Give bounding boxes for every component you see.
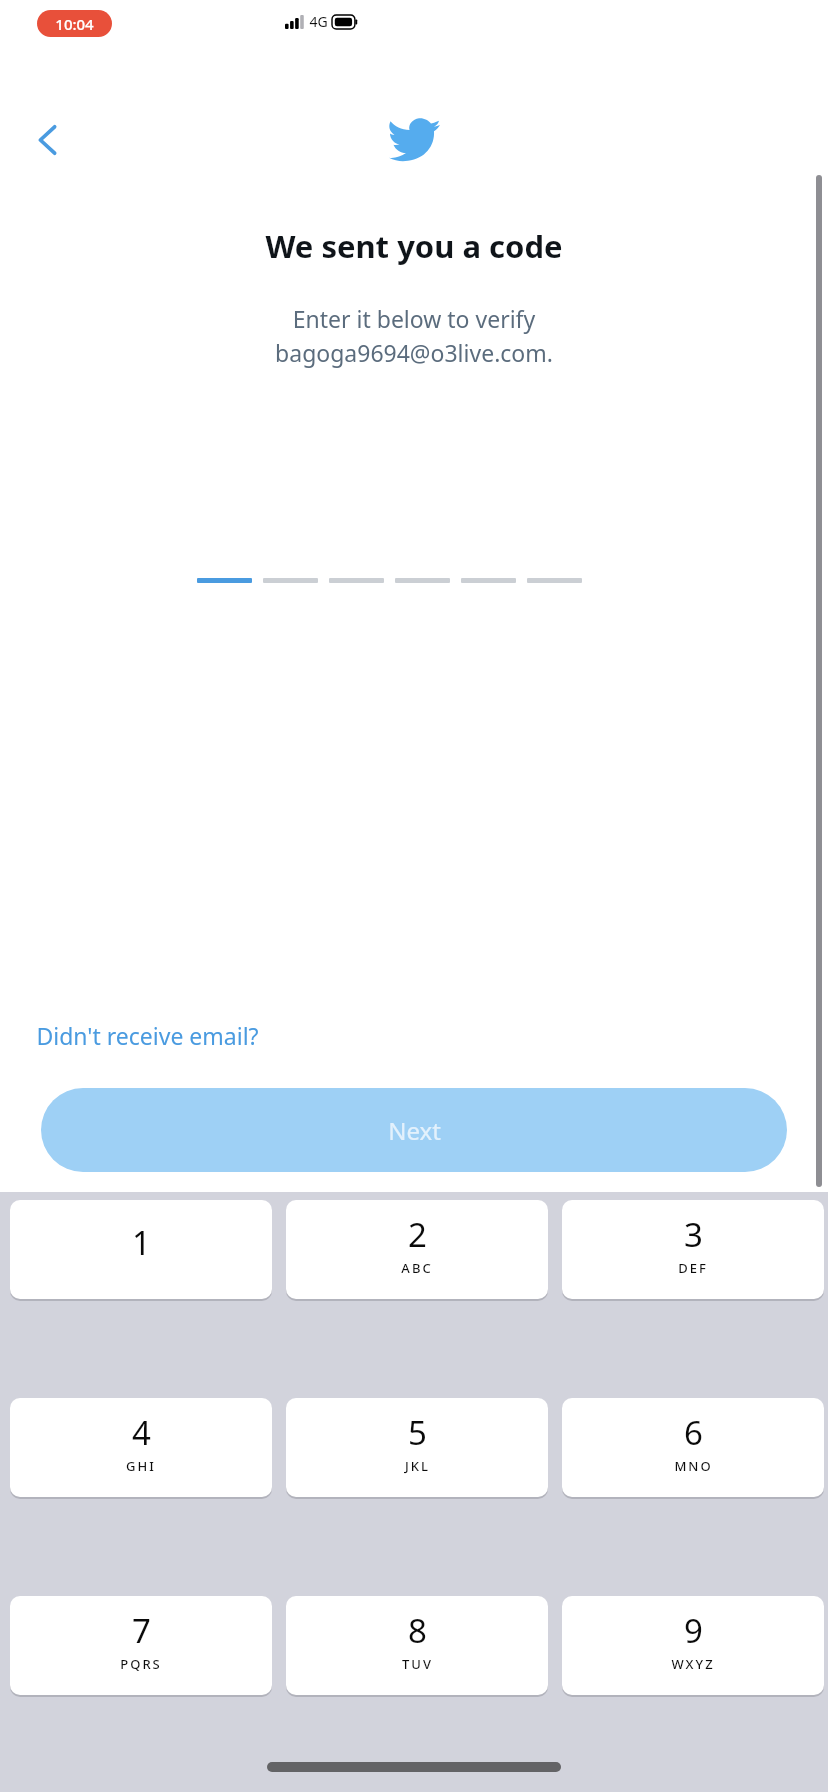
staticText: 9 xyxy=(684,1608,703,1653)
button[interactable]: 9 xyxy=(562,1596,824,1695)
staticText: MNO xyxy=(674,1457,713,1475)
staticText: 6 xyxy=(684,1410,703,1455)
button[interactable]: Code digit 1 xyxy=(197,578,252,583)
staticText: DEF xyxy=(678,1259,708,1277)
staticText: Next xyxy=(388,1114,441,1147)
staticText: JKL xyxy=(405,1457,430,1475)
staticText: GHI xyxy=(126,1457,156,1475)
staticText: 7 xyxy=(132,1608,151,1653)
staticText: WXYZ xyxy=(671,1655,715,1673)
staticText: 5 xyxy=(408,1410,427,1455)
staticText: 3 xyxy=(684,1212,703,1257)
button[interactable]: 7 xyxy=(10,1596,272,1695)
staticText: 4G xyxy=(309,12,328,31)
button[interactable]: 1 xyxy=(10,1200,272,1299)
staticText: 1 xyxy=(132,1220,151,1265)
button[interactable]: 2 xyxy=(286,1200,548,1299)
staticText: Enter it below to verify bagoga9694@o3li… xyxy=(275,303,553,368)
staticText: 8 xyxy=(408,1608,427,1653)
staticText: PQRS xyxy=(120,1655,162,1673)
button[interactable]: 6 xyxy=(562,1398,824,1497)
button[interactable]: Back xyxy=(12,105,82,175)
staticText: TUV xyxy=(402,1655,433,1673)
staticText: 4 xyxy=(132,1410,151,1455)
button[interactable]: Next xyxy=(41,1088,787,1172)
staticText: We sent you a code xyxy=(265,225,563,267)
staticText: ABC xyxy=(401,1259,433,1277)
button[interactable]: 4 xyxy=(10,1398,272,1497)
button[interactable]: 5 xyxy=(286,1398,548,1497)
button[interactable]: Didn't receive email? xyxy=(36,1020,259,1051)
button[interactable]: 8 xyxy=(286,1596,548,1695)
staticText: Didn't receive email? xyxy=(36,1020,259,1051)
staticText: 10:04 xyxy=(55,14,94,34)
button[interactable]: 3 xyxy=(562,1200,824,1299)
staticText: 2 xyxy=(408,1212,427,1257)
